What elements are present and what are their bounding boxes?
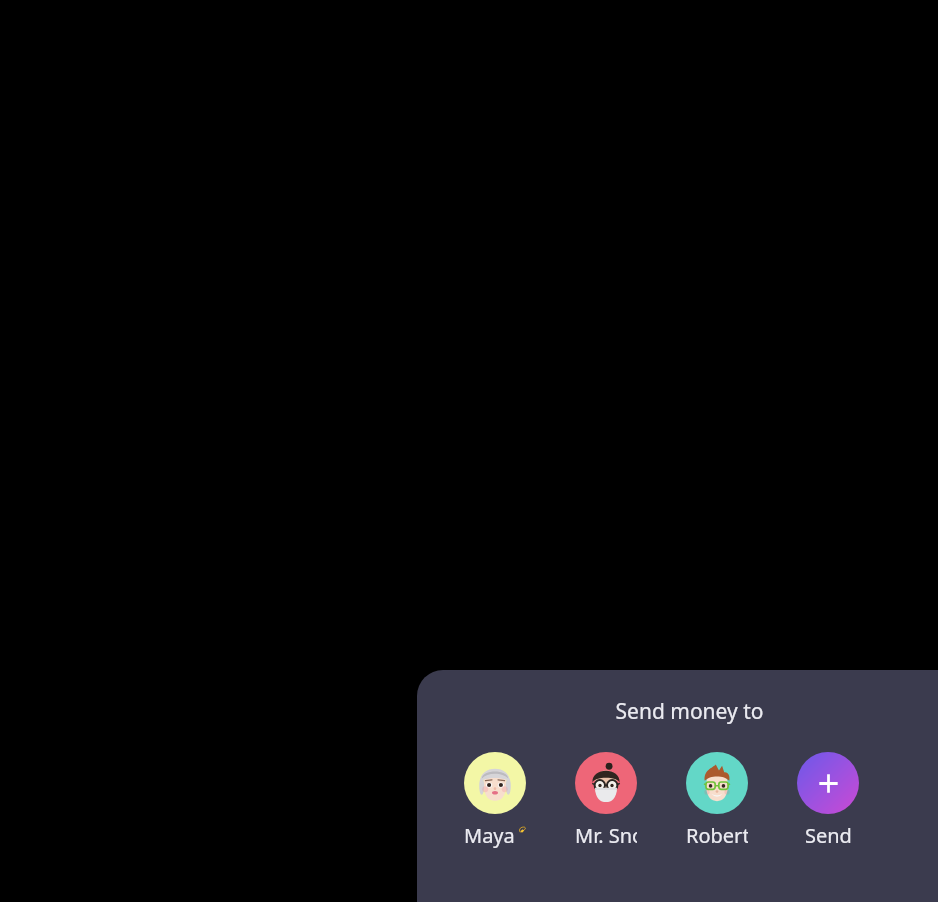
staticText: Send — [805, 822, 852, 849]
button[interactable]: Send money to Mr. Snow — [575, 752, 637, 849]
button[interactable]: Send money to Maya — [464, 752, 526, 849]
staticText: Robert — [686, 822, 748, 849]
button[interactable]: Send to new contact — [797, 752, 859, 849]
button[interactable]: Send money to Robert — [686, 752, 748, 849]
staticText: Maya — [464, 822, 515, 849]
staticText: Send money to — [429, 697, 938, 726]
staticText: Mr. Snow — [575, 822, 637, 849]
